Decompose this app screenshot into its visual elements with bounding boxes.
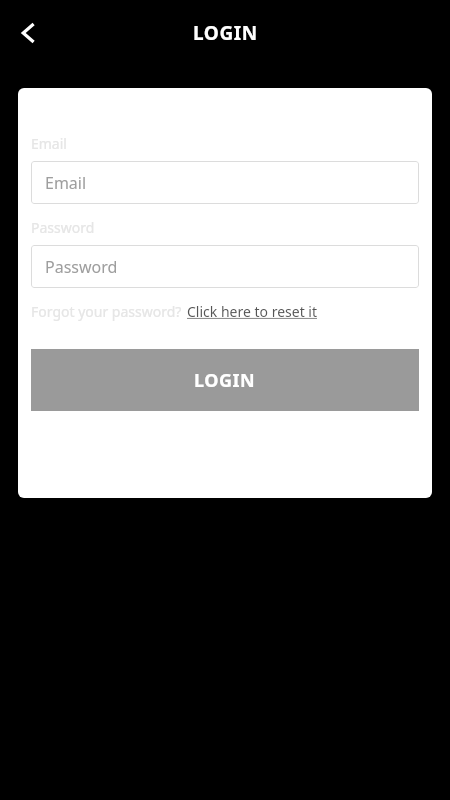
staticText: Forgot your password?	[31, 302, 182, 321]
staticText: Click here to reset it	[187, 302, 318, 321]
staticText: Email	[45, 172, 87, 194]
button[interactable]: LOGIN	[31, 349, 419, 411]
staticText: LOGIN	[194, 368, 256, 393]
button[interactable]: Back	[6, 11, 50, 55]
button[interactable]: Password	[31, 245, 419, 288]
staticText: Password	[31, 218, 95, 237]
staticText: Email	[31, 134, 67, 153]
button[interactable]: Click here to reset it	[187, 302, 318, 321]
staticText: LOGIN	[193, 20, 258, 46]
staticText: Password	[45, 256, 118, 278]
button[interactable]: Email	[31, 161, 419, 204]
